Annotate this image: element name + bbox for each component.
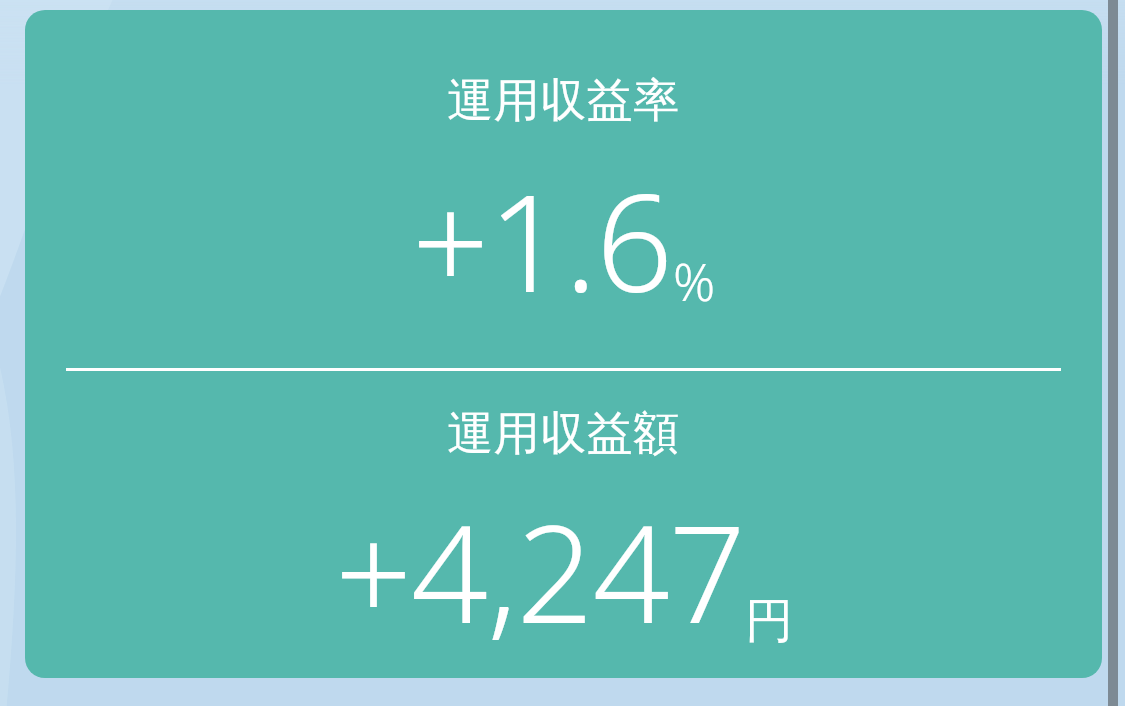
button[interactable]: 運用収益率 xyxy=(25,10,1102,678)
staticText: 運用収益額 xyxy=(447,405,680,463)
staticText: 運用収益率 xyxy=(447,72,680,130)
staticText: % xyxy=(673,245,716,316)
staticText: 円 xyxy=(745,591,793,651)
staticText: +1.6 xyxy=(412,148,673,332)
staticText: +4,247 xyxy=(335,479,745,663)
